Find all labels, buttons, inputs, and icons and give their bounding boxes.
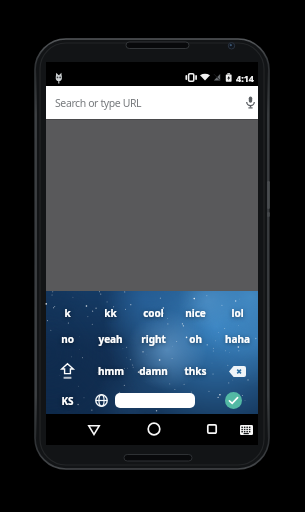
button[interactable]	[140, 417, 168, 441]
staticText: no	[61, 332, 74, 346]
button[interactable]	[225, 392, 242, 409]
button[interactable]	[216, 362, 258, 380]
button[interactable]: hmm	[89, 362, 132, 380]
button[interactable]	[198, 417, 226, 441]
button[interactable]	[115, 393, 195, 408]
button[interactable]: damn	[132, 362, 174, 380]
staticText: right	[141, 332, 166, 346]
staticText: hmm	[98, 364, 124, 378]
staticText: kk	[104, 306, 117, 320]
button[interactable]: kk	[89, 305, 132, 320]
button[interactable]: yeah	[89, 331, 132, 346]
staticText: cool	[143, 306, 164, 320]
staticText: yeah	[98, 332, 123, 346]
button[interactable]: lol	[216, 305, 258, 320]
button[interactable]: right	[132, 331, 174, 346]
button[interactable]: cool	[132, 305, 174, 320]
button[interactable]: oh	[174, 331, 216, 346]
staticText: oh	[189, 332, 202, 346]
staticText: haha	[225, 332, 250, 346]
button[interactable]: thks	[174, 362, 216, 380]
button[interactable]: nice	[174, 305, 216, 320]
staticText: nice	[185, 306, 206, 320]
button[interactable]: no	[46, 331, 89, 346]
button[interactable]	[80, 418, 108, 442]
button[interactable]: haha	[216, 331, 258, 346]
button[interactable]	[46, 362, 89, 380]
button[interactable]: Search or type URL	[46, 86, 258, 119]
staticText: damn	[139, 364, 168, 378]
staticText: KS	[61, 394, 74, 408]
staticText: lol	[231, 306, 244, 320]
staticText: 4:14	[236, 72, 254, 84]
button[interactable]: k	[46, 305, 89, 320]
staticText: k	[64, 306, 71, 320]
button[interactable]	[236, 420, 256, 440]
staticText: thks	[184, 364, 207, 378]
button[interactable]: KS	[46, 392, 89, 409]
button[interactable]	[89, 392, 113, 409]
staticText: Search or type URL	[55, 96, 142, 110]
